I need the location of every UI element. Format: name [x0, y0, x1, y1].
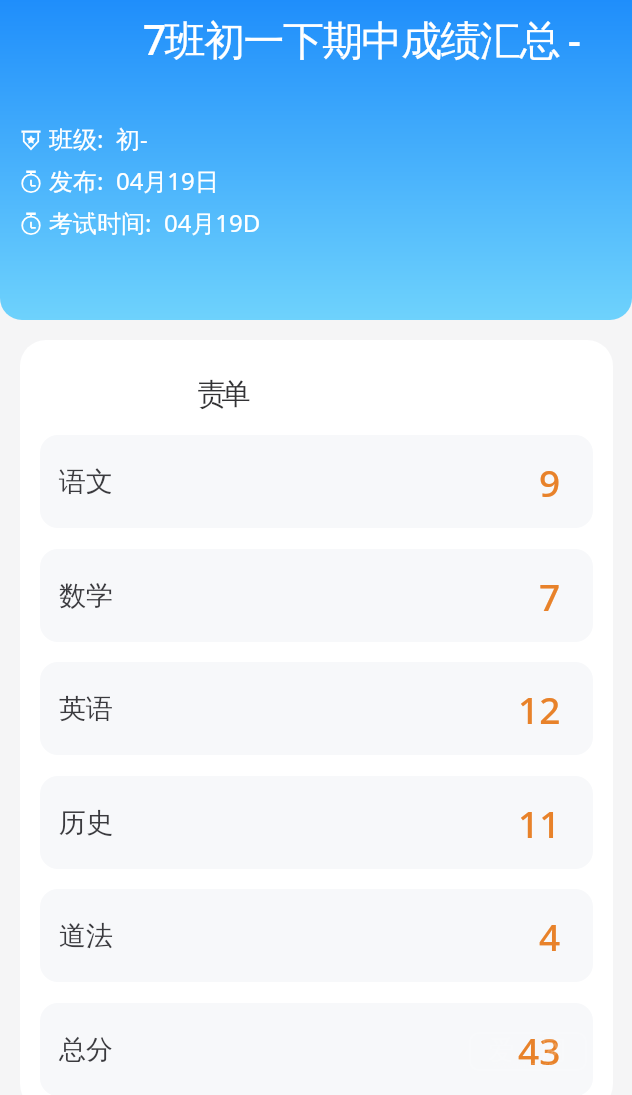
staticText: 4 — [539, 911, 561, 961]
staticText: 7班初一下期中成绩汇总 - — [90, 11, 632, 67]
staticText: 总分 — [59, 1033, 113, 1067]
button[interactable]: 英语 — [40, 662, 593, 755]
staticText: 语文 — [59, 465, 113, 499]
other: Exam time — [21, 211, 41, 235]
staticText: www.ixiaob.com — [493, 1058, 563, 1070]
staticText: 7 — [539, 571, 561, 621]
staticText: 11 — [518, 798, 561, 848]
other: Published — [21, 169, 41, 193]
staticText: 班级: 初- — [49, 122, 148, 155]
button[interactable]: 语文 — [40, 435, 593, 528]
staticText: 考试时间: 04月19D — [49, 206, 261, 239]
staticText: 道法 — [59, 919, 113, 953]
staticText: 12 — [518, 684, 561, 734]
staticText: 43 — [518, 1025, 561, 1075]
button[interactable]: 总分 — [40, 1003, 593, 1095]
button[interactable]: 数学 — [40, 549, 593, 642]
staticText: 爱 网 — [488, 1031, 568, 1067]
staticText: 历史 — [59, 806, 113, 840]
staticText: 9 — [539, 457, 561, 507]
staticText: 英语 — [59, 692, 113, 726]
staticText: 数学 — [59, 579, 113, 613]
staticText: 发布: 04月19日 — [49, 164, 219, 197]
button[interactable]: 道法 — [40, 889, 593, 982]
other: Class — [21, 127, 41, 151]
button[interactable]: 历史 — [40, 776, 593, 869]
staticText: 责单 — [200, 376, 248, 413]
